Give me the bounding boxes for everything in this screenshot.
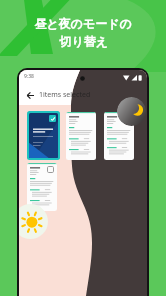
staticText: 9:38 bbox=[24, 73, 34, 80]
button[interactable] bbox=[27, 163, 57, 211]
button[interactable]: Day mode bbox=[19, 204, 48, 239]
button[interactable] bbox=[66, 112, 96, 160]
button[interactable]: Night mode bbox=[117, 97, 146, 126]
staticText: 昼と夜のモードの bbox=[34, 16, 132, 31]
button[interactable]: Back bbox=[25, 90, 36, 101]
button[interactable] bbox=[29, 113, 58, 158]
button[interactable]: Back bbox=[19, 85, 147, 105]
button[interactable] bbox=[104, 112, 134, 160]
staticText: 切り替え bbox=[59, 34, 108, 49]
staticText: 1items selected bbox=[39, 90, 91, 100]
